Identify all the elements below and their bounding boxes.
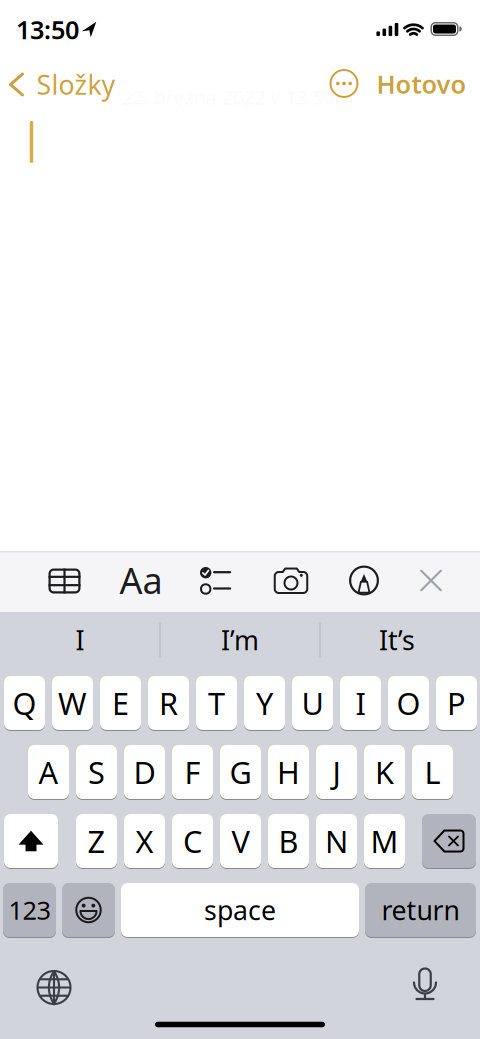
button[interactable]: J [316, 744, 357, 799]
button[interactable]: Shift [4, 813, 58, 868]
staticText: Hotovo [376, 67, 466, 101]
button[interactable]: Zpět na Složky [0, 67, 120, 102]
button[interactable]: Anotace [344, 560, 384, 600]
button[interactable]: O [388, 675, 429, 730]
staticText: 123 [8, 893, 50, 927]
button[interactable]: N [316, 813, 357, 868]
staticText: K [375, 752, 394, 792]
staticText: M [370, 821, 398, 861]
staticText: Z [87, 821, 105, 861]
button[interactable]: H [268, 744, 309, 799]
staticText: I’m [221, 622, 259, 658]
button[interactable]: Tabulka [42, 559, 86, 603]
staticText: W [58, 683, 87, 723]
button[interactable]: T [196, 675, 237, 730]
staticText: return [381, 892, 459, 928]
staticText: 13:50 [16, 13, 79, 46]
button[interactable]: Smazat [422, 813, 476, 868]
staticText: I [75, 622, 84, 658]
staticText: N [325, 821, 348, 861]
staticText: R [159, 683, 178, 723]
staticText: J [332, 752, 340, 792]
button[interactable]: U [292, 675, 333, 730]
button[interactable]: Diktování [401, 962, 449, 1010]
button[interactable]: Emoji [62, 882, 115, 937]
button[interactable]: Zavřít panel [411, 560, 451, 600]
staticText: I [355, 683, 365, 723]
button[interactable]: Hotovo [376, 67, 466, 101]
button[interactable]: Další klávesnice [30, 963, 78, 1011]
staticText: V [231, 821, 249, 861]
staticText: S [88, 752, 105, 792]
button[interactable]: A [28, 744, 69, 799]
staticText: X [135, 821, 153, 861]
staticText: L [424, 752, 440, 792]
button[interactable]: V [220, 813, 261, 868]
staticText: F [184, 752, 200, 792]
staticText: Y [256, 683, 273, 723]
button[interactable]: P [436, 675, 477, 730]
staticText: space [204, 892, 276, 928]
staticText: Složky [36, 67, 115, 102]
button[interactable]: Q [4, 675, 45, 730]
staticText: D [133, 752, 155, 792]
staticText: It’s [379, 622, 415, 658]
button[interactable]: Další akce [329, 69, 358, 98]
staticText: E [112, 683, 129, 723]
staticText: 22. března 2022 v 13:50 [121, 84, 334, 110]
button[interactable]: S [76, 744, 117, 799]
staticText: C [183, 821, 202, 861]
button[interactable]: K [364, 744, 405, 799]
button[interactable]: G [220, 744, 261, 799]
button[interactable]: B [268, 813, 309, 868]
button[interactable]: Čísla [3, 882, 56, 937]
staticText: B [278, 821, 298, 861]
button[interactable]: I’m [165, 617, 315, 663]
staticText: Q [12, 683, 36, 723]
button[interactable]: Z [76, 813, 117, 868]
button[interactable]: X [124, 813, 165, 868]
staticText: O [396, 683, 420, 723]
button[interactable]: return [365, 882, 476, 937]
button[interactable]: It’s [322, 617, 472, 663]
staticText: Aa [119, 556, 162, 604]
button[interactable]: F [172, 744, 213, 799]
staticText: G [229, 752, 251, 792]
button[interactable]: I [5, 617, 155, 663]
button[interactable]: Fotoaparát [269, 558, 313, 602]
button[interactable]: M [364, 813, 405, 868]
button[interactable]: R [148, 675, 189, 730]
staticText: P [447, 683, 466, 723]
button[interactable]: W [52, 675, 93, 730]
button[interactable]: Seznam úkolů [199, 567, 230, 595]
staticText: U [301, 683, 323, 723]
button[interactable]: space [121, 882, 359, 937]
button[interactable]: D [124, 744, 165, 799]
staticText: H [277, 752, 300, 792]
button[interactable]: I [340, 675, 381, 730]
button[interactable]: E [100, 675, 141, 730]
button[interactable]: L [412, 744, 453, 799]
button[interactable]: Y [244, 675, 285, 730]
button[interactable]: C [172, 813, 213, 868]
button[interactable]: Formát [117, 558, 165, 602]
staticText: A [38, 752, 58, 792]
staticText: T [208, 683, 225, 723]
